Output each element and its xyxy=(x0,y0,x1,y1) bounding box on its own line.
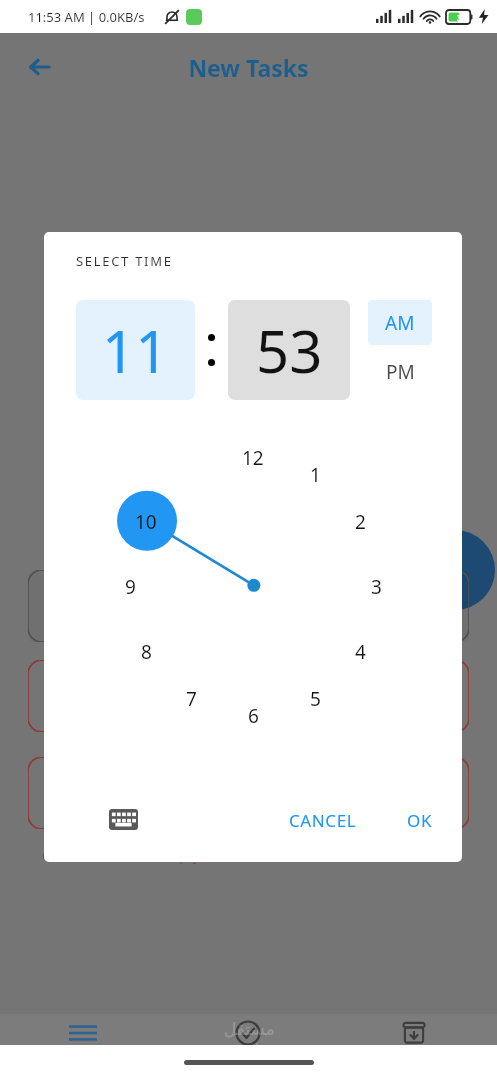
button[interactable]: Switch to text input xyxy=(104,800,142,838)
button[interactable]: AM xyxy=(368,300,432,345)
button[interactable]: Task Date xyxy=(28,757,469,829)
staticText: CANCEL xyxy=(289,809,357,832)
staticText: OK xyxy=(407,809,432,832)
staticText: New Tasks xyxy=(62,52,435,83)
button[interactable]: Back xyxy=(18,45,62,89)
staticText: SELECT TIME xyxy=(76,252,173,270)
button[interactable]: Add task xyxy=(415,530,495,610)
staticText: 1 xyxy=(310,462,321,488)
staticText: 7 xyxy=(186,686,197,712)
button[interactable]: 53 xyxy=(228,300,350,400)
button[interactable] xyxy=(28,570,469,642)
staticText: مستقل xyxy=(224,1019,275,1039)
button[interactable]: PM xyxy=(368,355,432,389)
staticText: 8 xyxy=(141,639,152,665)
staticText: AM xyxy=(385,310,415,336)
staticText: 2 xyxy=(355,509,366,535)
staticText: 4 xyxy=(355,639,366,665)
button[interactable]: 7 xyxy=(169,677,213,721)
button[interactable] xyxy=(28,660,469,732)
button[interactable]: 6 xyxy=(231,694,275,738)
button[interactable]: 8 xyxy=(124,630,168,674)
button[interactable]: 11 xyxy=(76,300,195,400)
button[interactable]: 12 xyxy=(231,436,275,480)
staticText: 9 xyxy=(125,574,136,600)
staticText: date must not be empty xyxy=(42,845,200,864)
staticText: 5 xyxy=(310,686,321,712)
staticText: 35 xyxy=(457,12,467,23)
staticText: 3 xyxy=(371,574,382,600)
staticText: Done xyxy=(228,1051,269,1073)
button[interactable]: 2 xyxy=(338,500,382,544)
staticText: 53 xyxy=(256,311,323,390)
staticText: PM xyxy=(386,359,415,385)
button[interactable]: 10 xyxy=(124,500,168,544)
staticText: 11 xyxy=(102,311,169,390)
button[interactable]: 4 xyxy=(338,630,382,674)
staticText: 11:53 AM | 0.0KB/s xyxy=(28,8,145,26)
staticText: mostaql.com xyxy=(209,1039,289,1057)
button[interactable]: 9 xyxy=(108,565,152,609)
button[interactable]: OK xyxy=(395,800,444,841)
button[interactable]: Archived xyxy=(331,1014,497,1079)
staticText: 10 xyxy=(135,509,157,535)
button[interactable]: 3 xyxy=(354,565,398,609)
staticText: 12 xyxy=(242,445,264,471)
button[interactable]: CANCEL xyxy=(277,800,369,841)
button[interactable]: Tasks xyxy=(0,1014,165,1079)
button[interactable]: 1 xyxy=(293,453,337,497)
button[interactable]: Done xyxy=(165,1014,331,1079)
staticText: 6 xyxy=(248,703,259,729)
button[interactable]: 5 xyxy=(293,677,337,721)
